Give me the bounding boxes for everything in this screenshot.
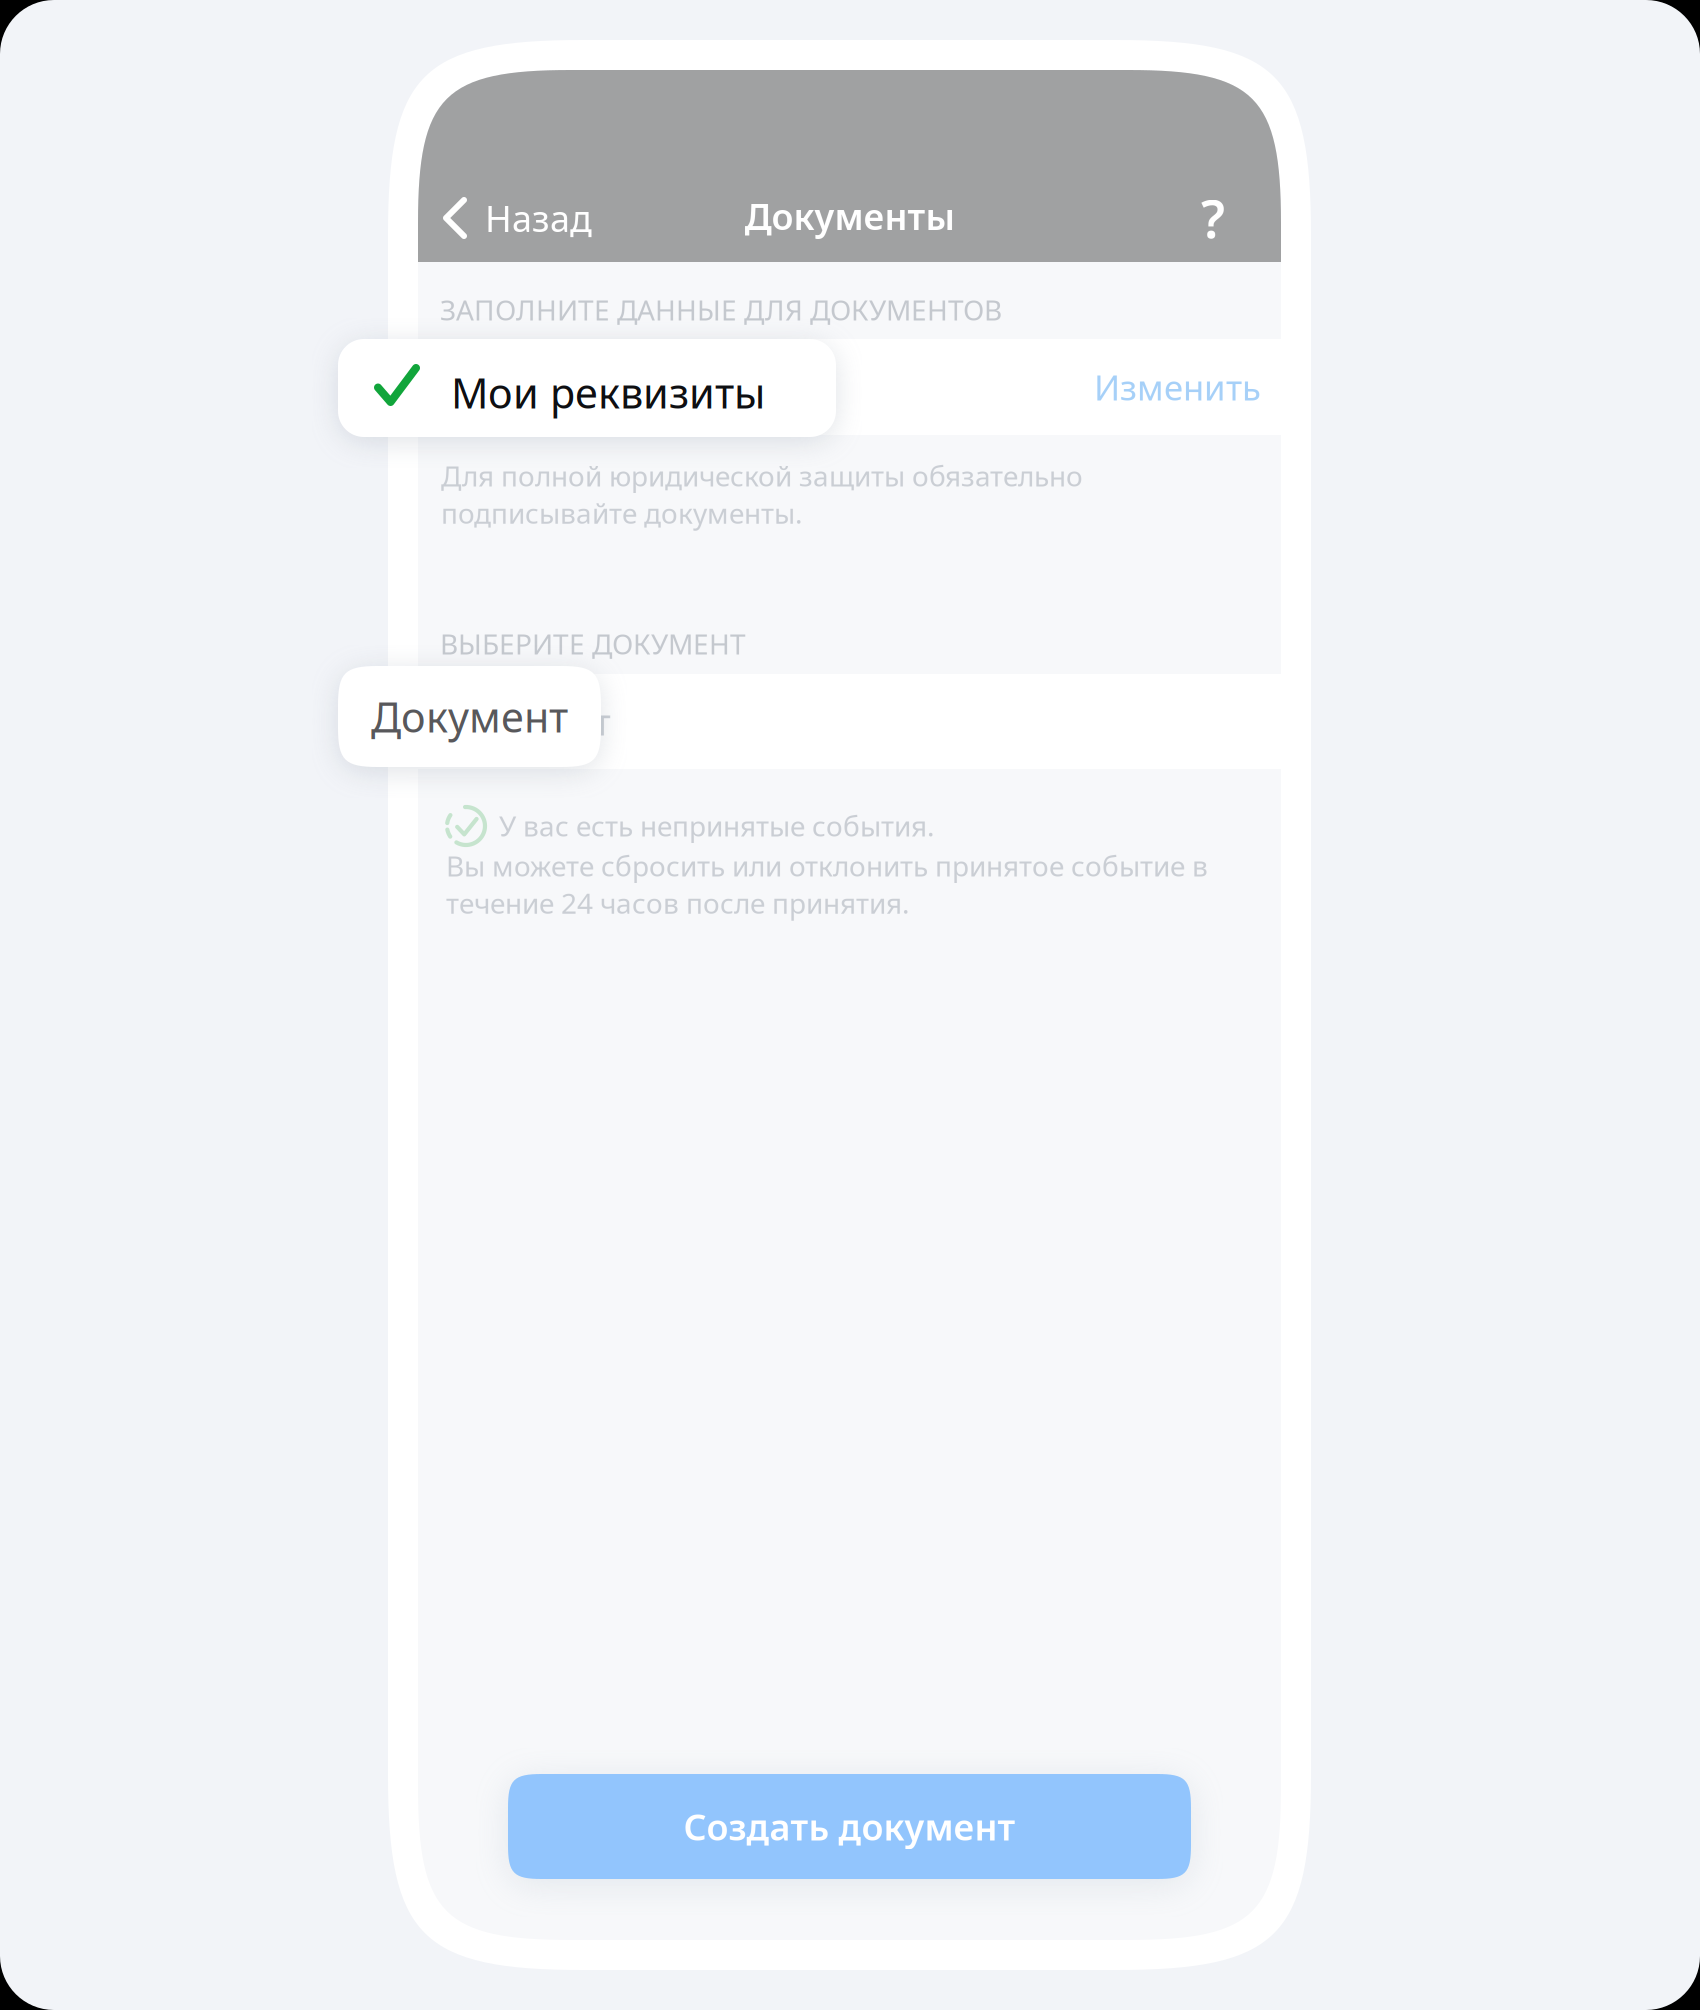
button[interactable]: Назад	[418, 176, 614, 260]
staticText: ?	[1201, 183, 1225, 253]
staticText: У вас есть непринятые события.	[499, 807, 935, 844]
staticText: Изменить	[1094, 364, 1261, 410]
staticText: Документ	[371, 689, 568, 744]
staticText: ЗАПОЛНИТЕ ДАННЫЕ ДЛЯ ДОКУМЕНТОВ	[440, 291, 1002, 328]
button[interactable]: Справка	[1169, 176, 1257, 260]
button[interactable]: Документ	[418, 674, 1281, 769]
staticText: Документ	[440, 698, 611, 745]
staticText: Для полной юридической защиты обязательн…	[441, 457, 1083, 531]
button[interactable]: Создать документ	[508, 1774, 1191, 1879]
staticText: Создать документ	[683, 1803, 1015, 1850]
button[interactable]: Мои реквизиты	[418, 339, 1281, 435]
staticText: Вы можете сбросить или отклонить принято…	[446, 847, 1208, 921]
staticText: Мои реквизиты	[451, 365, 765, 420]
staticText: Мои реквизиты	[440, 363, 712, 411]
staticText: Назад	[485, 194, 592, 242]
staticText: ВЫБЕРИТЕ ДОКУМЕНТ	[440, 625, 746, 662]
staticText: Документы	[744, 192, 954, 240]
